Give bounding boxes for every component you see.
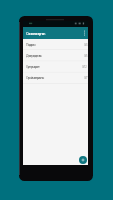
staticText: Для праздника — [26, 53, 41, 58]
button[interactable]: Add shopping list — [79, 156, 87, 164]
staticText: 0/4 — [84, 43, 87, 47]
button[interactable]: Для праздника — [23, 50, 88, 61]
button[interactable]: Подарки — [23, 39, 88, 50]
button[interactable]: Стройматериалы — [23, 72, 88, 83]
staticText: 0/12 — [82, 65, 87, 69]
staticText: 0/7 — [84, 76, 87, 80]
staticText: Стройматериалы — [26, 75, 44, 80]
staticText: Список покупок — [26, 31, 45, 36]
staticText: 0/6 — [84, 54, 87, 58]
button[interactable]: More options — [81, 27, 88, 39]
staticText: Подарки — [26, 42, 35, 47]
button[interactable]: Супермаркет — [23, 61, 88, 72]
staticText: Супермаркет — [26, 64, 39, 69]
